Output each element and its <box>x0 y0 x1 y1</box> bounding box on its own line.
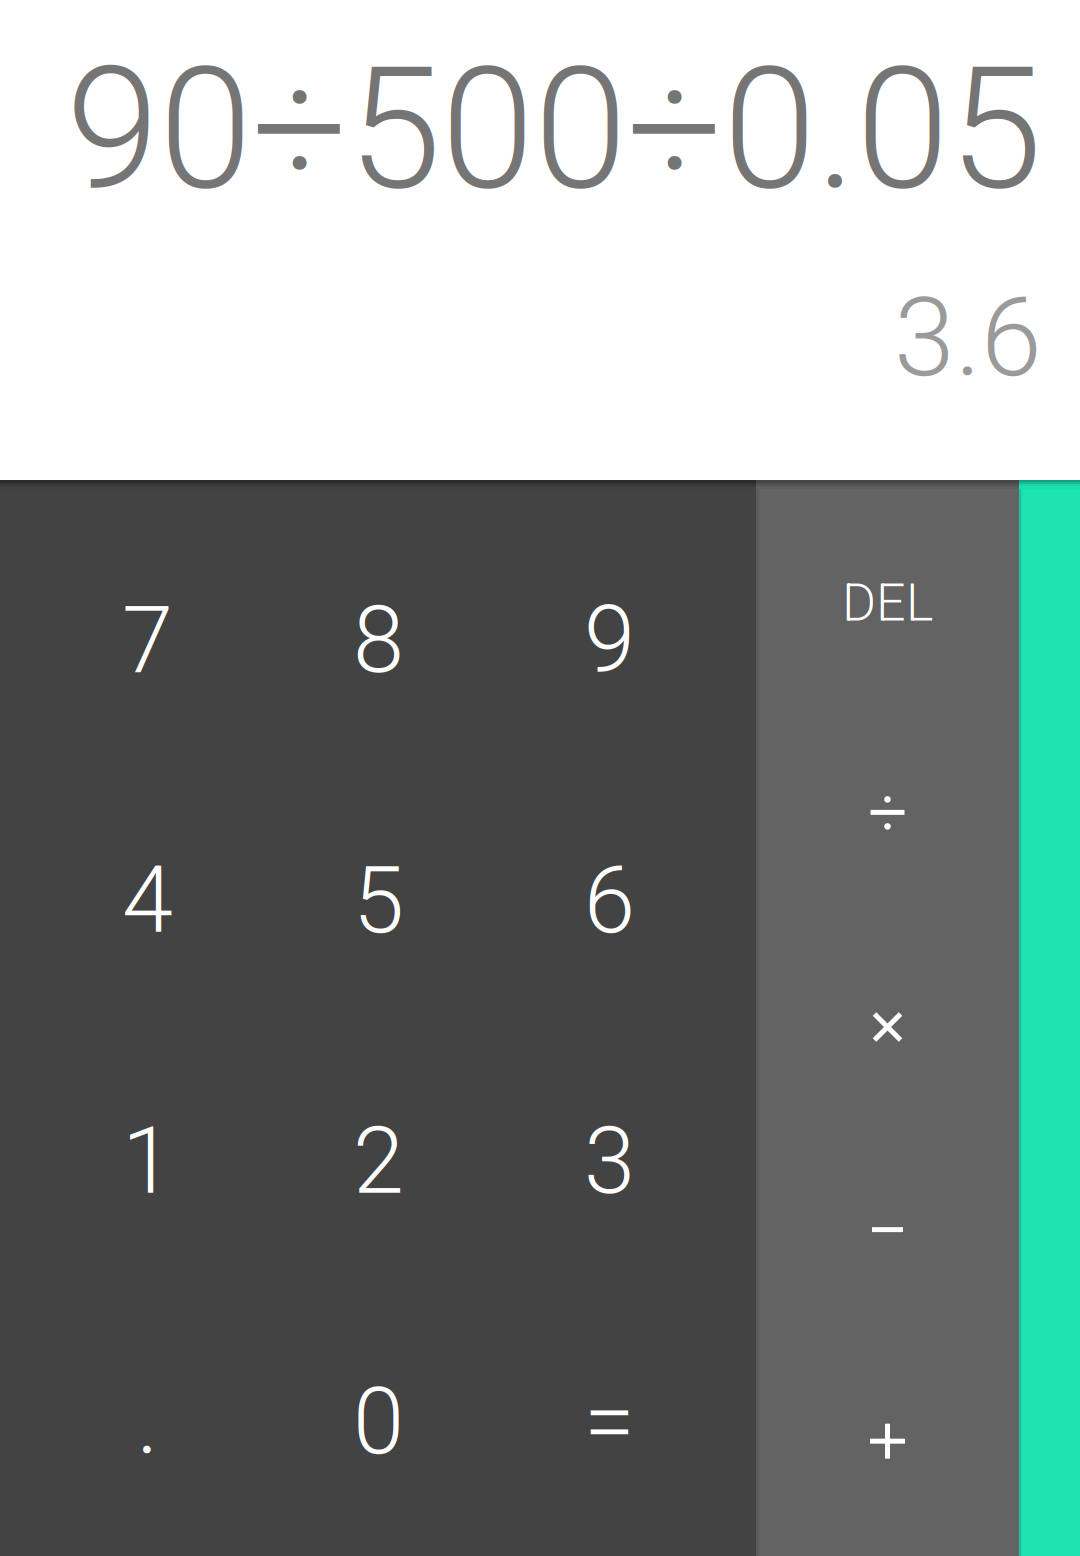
button[interactable]: 3 <box>494 1031 725 1291</box>
staticText: 5 <box>353 847 404 955</box>
staticText: 0 <box>353 1368 404 1476</box>
button[interactable]: 2 <box>263 1031 494 1291</box>
button[interactable]: 4 <box>32 770 263 1031</box>
button[interactable]: Add <box>756 1336 1019 1546</box>
button[interactable]: Multiply <box>756 917 1019 1127</box>
staticText: 3 <box>584 1107 635 1215</box>
button[interactable]: 8 <box>263 510 494 770</box>
button[interactable]: History <box>1019 480 1080 1556</box>
button[interactable]: Divide <box>756 708 1019 917</box>
staticText: 8 <box>353 586 404 694</box>
button[interactable]: Subtract <box>756 1127 1019 1336</box>
staticText: DEL <box>842 572 933 633</box>
button[interactable]: Delete <box>756 498 1019 708</box>
staticText: 4 <box>122 847 173 955</box>
button[interactable]: Equals <box>494 1291 725 1552</box>
staticText: . <box>136 1368 158 1476</box>
staticText: 2 <box>353 1107 404 1215</box>
staticText: 9 <box>584 586 635 694</box>
button[interactable]: 5 <box>263 770 494 1031</box>
staticText: 7 <box>122 586 173 694</box>
button[interactable]: 9 <box>494 510 725 770</box>
staticText: 1 <box>122 1107 173 1215</box>
staticText: = <box>584 1368 635 1476</box>
button[interactable]: 6 <box>494 770 725 1031</box>
staticText: 3.6 <box>894 274 1042 402</box>
button[interactable]: 0 <box>263 1291 494 1552</box>
button[interactable]: 7 <box>32 510 263 770</box>
button[interactable]: 1 <box>32 1031 263 1291</box>
staticText: 6 <box>584 847 635 955</box>
button[interactable]: Decimal point <box>32 1291 263 1552</box>
staticText: 90÷500÷0.05 <box>66 31 1042 228</box>
